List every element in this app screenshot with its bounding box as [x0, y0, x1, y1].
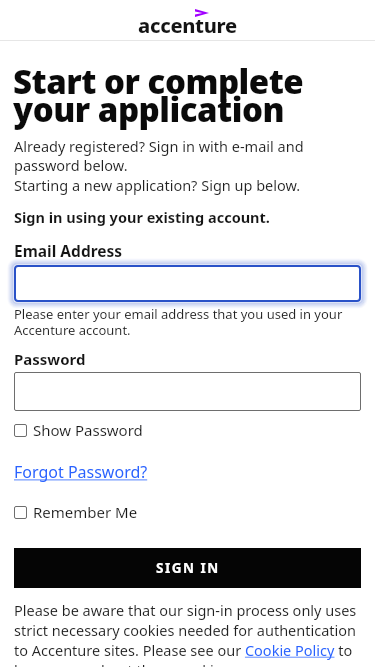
staticText: Already registered? Sign in with e-mail … — [14, 136, 304, 196]
staticText: Start or complete your application — [13, 59, 304, 131]
staticText: Email Address — [14, 240, 123, 261]
button[interactable]: SIGN IN — [14, 548, 361, 588]
button[interactable] — [14, 372, 361, 411]
button[interactable] — [14, 265, 361, 302]
button[interactable]: Show Password — [14, 420, 143, 440]
staticText: Password — [14, 349, 86, 369]
button[interactable]: Forgot Password? — [14, 461, 148, 483]
staticText: accenture — [138, 12, 237, 39]
staticText: Sign in using your existing account. — [14, 207, 270, 227]
staticText: Please be aware that our sign-in process… — [14, 600, 357, 667]
staticText: SIGN IN — [156, 559, 220, 577]
staticText: Remember Me — [33, 502, 138, 522]
staticText: Show Password — [33, 420, 143, 440]
staticText: Please enter your email address that you… — [14, 305, 343, 338]
button[interactable]: Remember Me — [14, 502, 138, 522]
